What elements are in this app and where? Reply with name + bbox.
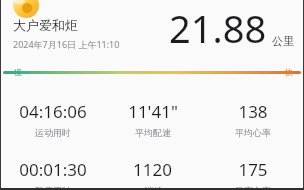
staticText: 平均配速	[135, 127, 171, 138]
button[interactable]: 175	[203, 158, 302, 190]
staticText: 175	[238, 158, 268, 181]
staticText: 最高心率	[235, 185, 271, 190]
button[interactable]: Profile photo	[13, 0, 39, 18]
button[interactable]: 138	[203, 100, 302, 138]
staticText: 11'41"	[128, 100, 178, 123]
staticText: 消耗	[144, 185, 162, 190]
button[interactable]: 1120	[102, 158, 203, 190]
staticText: 21.88	[169, 2, 267, 54]
staticText: 暂停用时	[35, 185, 71, 190]
button[interactable]: 00:01:30	[4, 158, 102, 190]
staticText: 公里	[272, 34, 294, 48]
staticText: 138	[238, 100, 268, 123]
staticText: 大户爱和炬	[13, 17, 78, 33]
staticText: 1120	[133, 158, 172, 181]
button[interactable]: 04:16:06	[4, 100, 102, 138]
button[interactable]: 11'41"	[102, 100, 203, 138]
staticText: 00:01:30	[19, 158, 87, 181]
staticText: 快	[285, 67, 293, 77]
staticText: 平均心率	[235, 127, 271, 138]
staticText: 04:16:06	[19, 100, 87, 123]
staticText: 慢	[14, 67, 22, 77]
staticText: 2024年7月16日 上午11:10	[13, 38, 120, 50]
staticText: 运动用时	[35, 127, 71, 138]
